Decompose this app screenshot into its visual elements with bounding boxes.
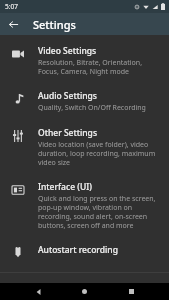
button[interactable]: Back <box>3 14 23 34</box>
button[interactable]: Video Settings <box>0 38 169 83</box>
staticText: Interface (UI) <box>38 181 92 193</box>
button[interactable]: Audio Settings <box>0 83 169 120</box>
staticText: Other Settings <box>38 127 98 139</box>
staticText: Settings <box>33 17 76 32</box>
staticText: Video Settings <box>38 45 97 57</box>
staticText: Autostart recording <box>38 244 118 256</box>
staticText: Video location (save folder), video dura… <box>38 140 161 167</box>
button[interactable]: Autostart recording <box>0 237 169 267</box>
button[interactable]: Recents <box>123 283 140 300</box>
button[interactable]: Other Settings <box>0 120 169 174</box>
staticText: Resolution, Bitrate, Orientation, Focus,… <box>38 58 161 76</box>
button[interactable]: Home <box>76 283 93 300</box>
staticText: 5:07 <box>5 2 18 11</box>
button[interactable]: Back <box>30 283 47 300</box>
staticText: Quick and long press on the screen, pop-… <box>38 194 161 230</box>
button[interactable]: Interface (UI) <box>0 174 169 237</box>
staticText: Audio Settings <box>38 90 97 102</box>
staticText: Quality, Switch On/Off Recording <box>38 103 146 113</box>
